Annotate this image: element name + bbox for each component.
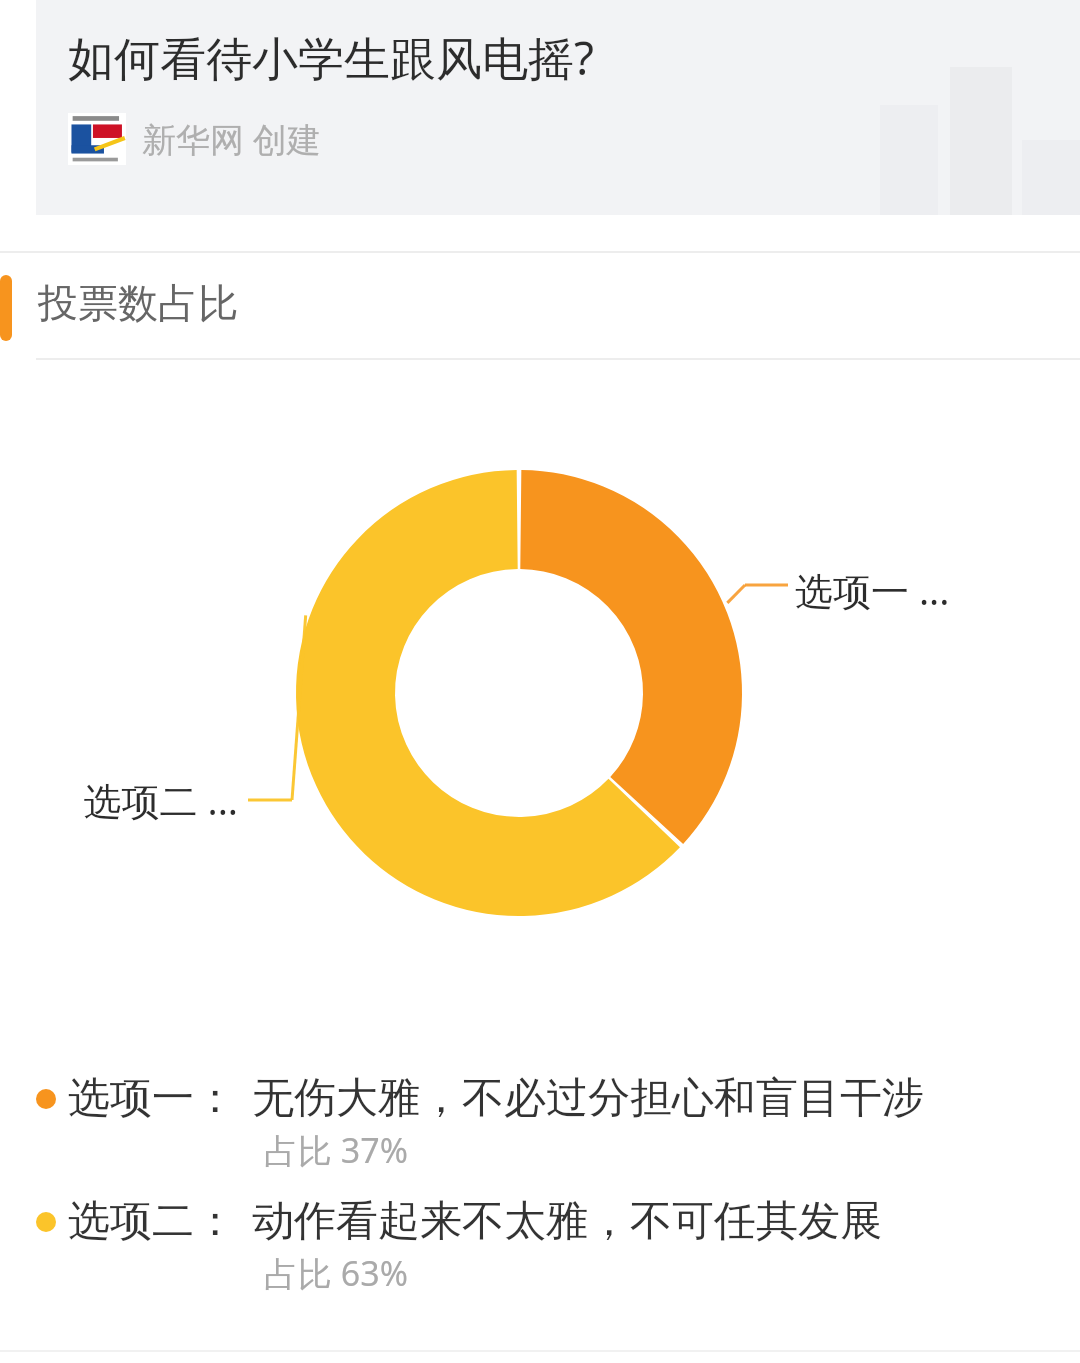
- staticText: 选项二 ...: [0, 774, 238, 826]
- staticText: 选项一：: [68, 1072, 236, 1125]
- staticText: 无伤大雅，不必过分担心和盲目干涉: [252, 1072, 924, 1125]
- staticText: 占比 37%: [264, 1127, 408, 1173]
- other: 新华网 logo: [68, 113, 126, 165]
- staticText: 选项一 ...: [795, 564, 950, 616]
- staticText: 如何看待小学生跟风电摇?: [68, 26, 594, 89]
- staticText: 占比 63%: [264, 1250, 408, 1296]
- staticText: 选项二：: [68, 1195, 236, 1248]
- button[interactable]: 选项二：: [0, 1191, 1080, 1300]
- staticText: 新华网 创建: [142, 116, 321, 162]
- staticText: 投票数占比: [38, 278, 238, 328]
- button[interactable]: 选项一：: [0, 1068, 1080, 1177]
- staticText: 动作看起来不太雅，不可任其发展: [252, 1195, 882, 1248]
